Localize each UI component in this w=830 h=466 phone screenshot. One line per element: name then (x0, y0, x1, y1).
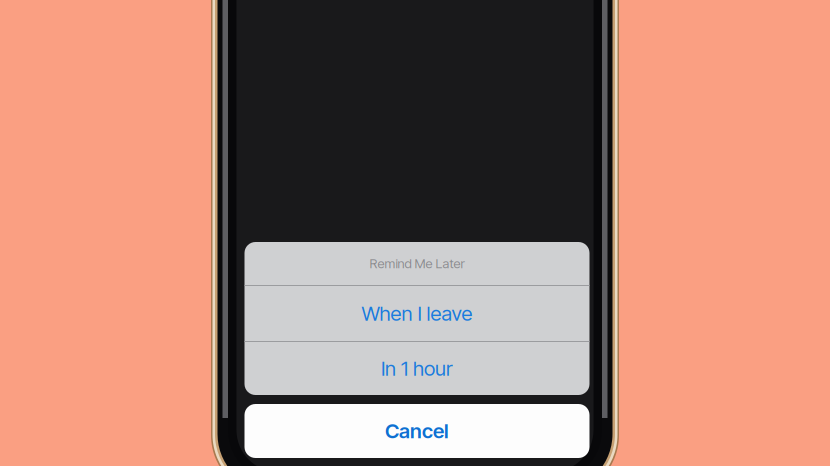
staticText: Cancel (385, 419, 449, 443)
staticText: When I leave (361, 301, 472, 326)
button[interactable]: Cancel (244, 404, 589, 458)
staticText: Remind Me Later (369, 256, 464, 271)
button[interactable]: In 1 hour (244, 342, 589, 395)
button[interactable]: When I leave (244, 286, 589, 341)
staticText: In 1 hour (381, 356, 453, 381)
